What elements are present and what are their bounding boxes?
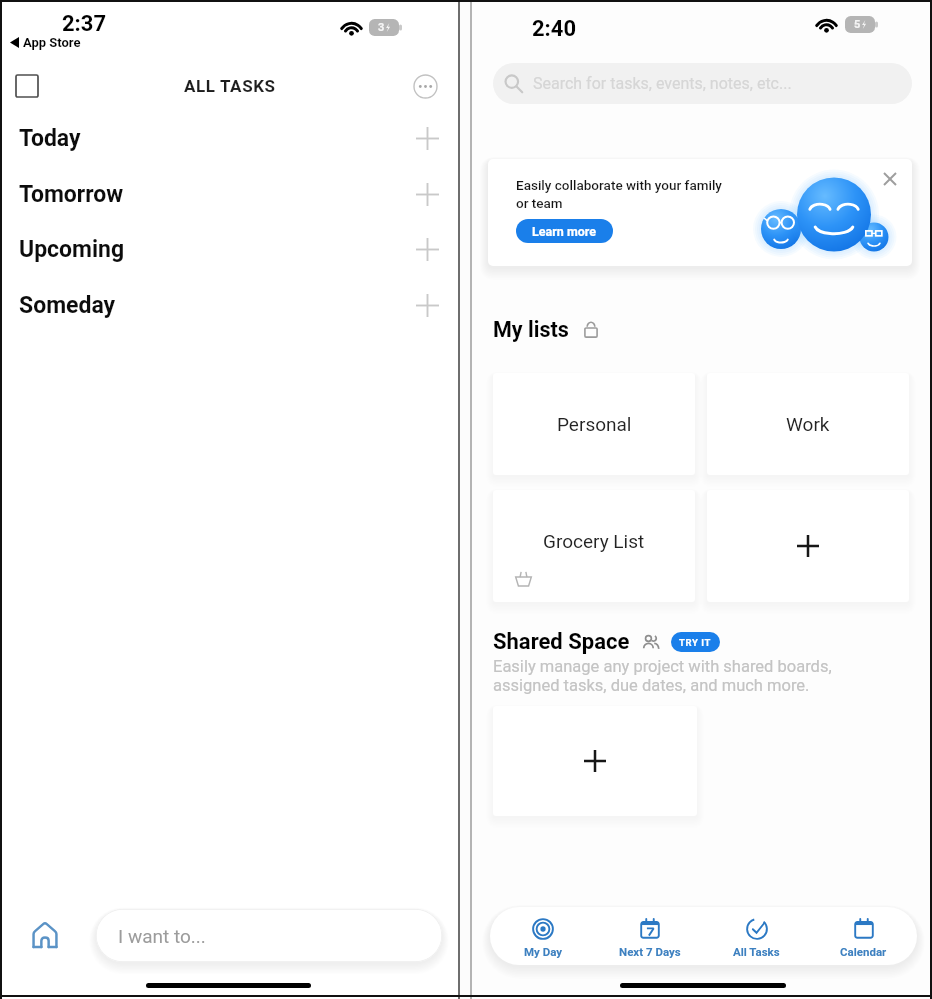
button[interactable]: Add task to Today: [415, 126, 440, 151]
button[interactable]: Today: [0, 115, 458, 161]
staticText: App Store: [23, 35, 81, 50]
staticText: Calendar: [840, 945, 887, 958]
button[interactable]: More options: [413, 74, 438, 99]
staticText: TRY IT: [679, 637, 712, 648]
staticText: Shared Space: [493, 629, 630, 655]
staticText: or team: [516, 195, 563, 211]
button[interactable]: Add list: [707, 490, 909, 602]
staticText: Work: [786, 413, 830, 435]
staticText: Upcoming: [19, 236, 125, 263]
button[interactable]: Dismiss: [878, 167, 902, 191]
button[interactable]: Upcoming: [0, 226, 458, 272]
staticText: Today: [19, 125, 81, 152]
button[interactable]: Learn more: [516, 219, 613, 243]
staticText: Search for tasks, events, notes, etc...: [533, 74, 792, 93]
button[interactable]: Home: [31, 921, 59, 949]
staticText: ALL TASKS: [184, 76, 276, 96]
button[interactable]: Easily collaborate with your family: [488, 159, 912, 266]
button[interactable]: Add task to Someday: [415, 293, 440, 318]
button[interactable]: Next 7 Days: [596, 909, 703, 965]
staticText: 5: [854, 18, 861, 31]
staticText: Personal: [557, 413, 632, 435]
staticText: Someday: [19, 292, 116, 319]
staticText: assigned tasks, due dates, and much more…: [493, 676, 810, 695]
staticText: All Tasks: [733, 945, 780, 958]
staticText: I want to...: [118, 925, 206, 947]
staticText: 2:37: [62, 11, 107, 37]
button[interactable]: Someday: [0, 282, 458, 328]
button[interactable]: Work: [707, 373, 909, 475]
button[interactable]: Tomorrow: [0, 171, 458, 217]
staticText: My Day: [524, 945, 563, 958]
staticText: Tomorrow: [19, 181, 124, 208]
button[interactable]: Grocery List: [493, 490, 695, 602]
staticText: Next 7 Days: [619, 945, 681, 958]
button[interactable]: I want to...: [96, 909, 442, 962]
button[interactable]: All Tasks: [703, 909, 810, 965]
button[interactable]: Add shared space: [493, 706, 697, 816]
button[interactable]: Search for tasks, events, notes, etc...: [493, 63, 912, 104]
staticText: 3: [378, 21, 385, 34]
staticText: Easily collaborate with your family: [516, 177, 722, 193]
button[interactable]: TRY IT: [671, 632, 720, 652]
staticText: Learn more: [532, 224, 597, 239]
button[interactable]: Select all: [16, 75, 38, 97]
staticText: Grocery List: [543, 530, 645, 552]
staticText: 2:40: [532, 16, 577, 42]
button[interactable]: Add task to Upcoming: [415, 237, 440, 262]
button[interactable]: Calendar: [810, 909, 917, 965]
button[interactable]: Personal: [493, 373, 695, 475]
button[interactable]: Add task to Tomorrow: [415, 182, 440, 207]
staticText: Easily manage any project with shared bo…: [493, 657, 832, 676]
staticText: My lists: [493, 317, 569, 342]
button[interactable]: My Day: [490, 909, 596, 965]
